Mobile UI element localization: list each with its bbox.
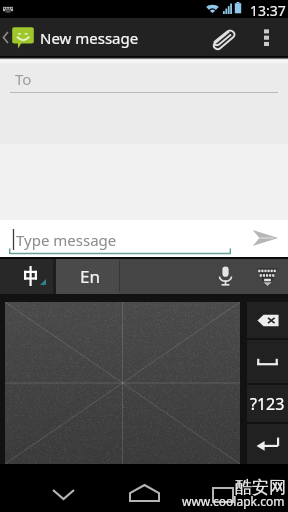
staticText: 酷安网: [235, 477, 286, 498]
button[interactable]: Enter: [247, 424, 288, 464]
staticText: www.coolapk.com: [182, 493, 285, 509]
button[interactable]: Space: [247, 340, 288, 383]
staticText: Type message: [16, 230, 117, 250]
staticText: En: [80, 265, 100, 288]
staticText: 13:37: [250, 1, 286, 19]
button[interactable]: En: [56, 258, 119, 294]
button[interactable]: Home: [112, 464, 176, 512]
staticText: ?123: [250, 393, 285, 415]
button[interactable]: Handwriting area: [5, 302, 240, 464]
button[interactable]: Switch keyboard: [248, 258, 286, 294]
button[interactable]: Hide keyboard: [32, 464, 96, 512]
button[interactable]: Attach: [200, 18, 240, 57]
button[interactable]: Recent apps: [196, 464, 252, 512]
button[interactable]: New message: [0, 18, 139, 57]
staticText: To: [15, 69, 32, 89]
button[interactable]: [0, 258, 53, 294]
button[interactable]: More options: [253, 18, 279, 57]
button[interactable]: Voice input: [206, 258, 244, 294]
button[interactable]: Backspace: [247, 302, 288, 338]
button[interactable]: Send: [240, 220, 288, 258]
button[interactable]: ?123: [247, 385, 288, 422]
staticText: New message: [40, 28, 139, 48]
